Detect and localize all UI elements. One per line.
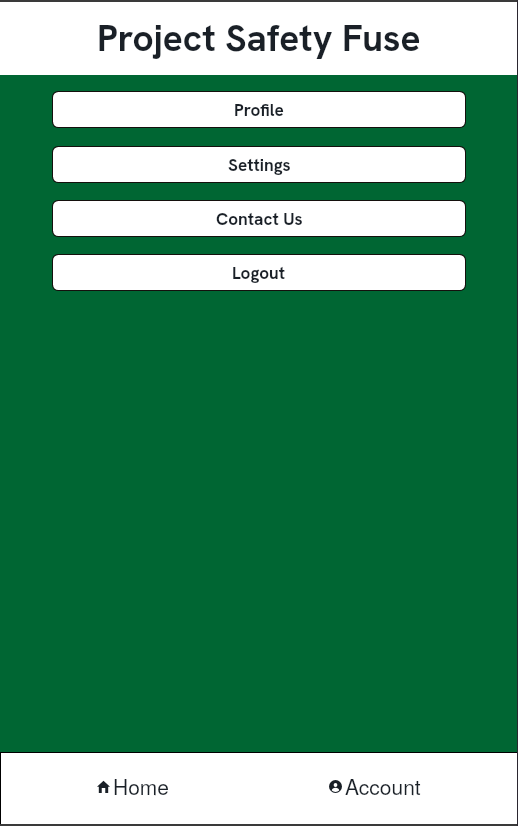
staticText: Logout: [232, 262, 286, 284]
other: Home: [97, 780, 110, 793]
button[interactable]: Logout: [53, 255, 465, 290]
button[interactable]: Home: [1, 753, 259, 825]
button[interactable]: Contact Us: [53, 201, 465, 236]
staticText: Settings: [228, 154, 291, 176]
other: Account: [329, 780, 342, 793]
button[interactable]: Account: [259, 753, 517, 825]
staticText: Home: [113, 771, 170, 801]
staticText: Contact Us: [216, 208, 303, 230]
staticText: Profile: [234, 99, 284, 121]
staticText: Account: [345, 771, 421, 801]
button[interactable]: Profile: [53, 92, 465, 127]
staticText: Project Safety Fuse: [97, 14, 421, 62]
button[interactable]: Settings: [53, 147, 465, 182]
